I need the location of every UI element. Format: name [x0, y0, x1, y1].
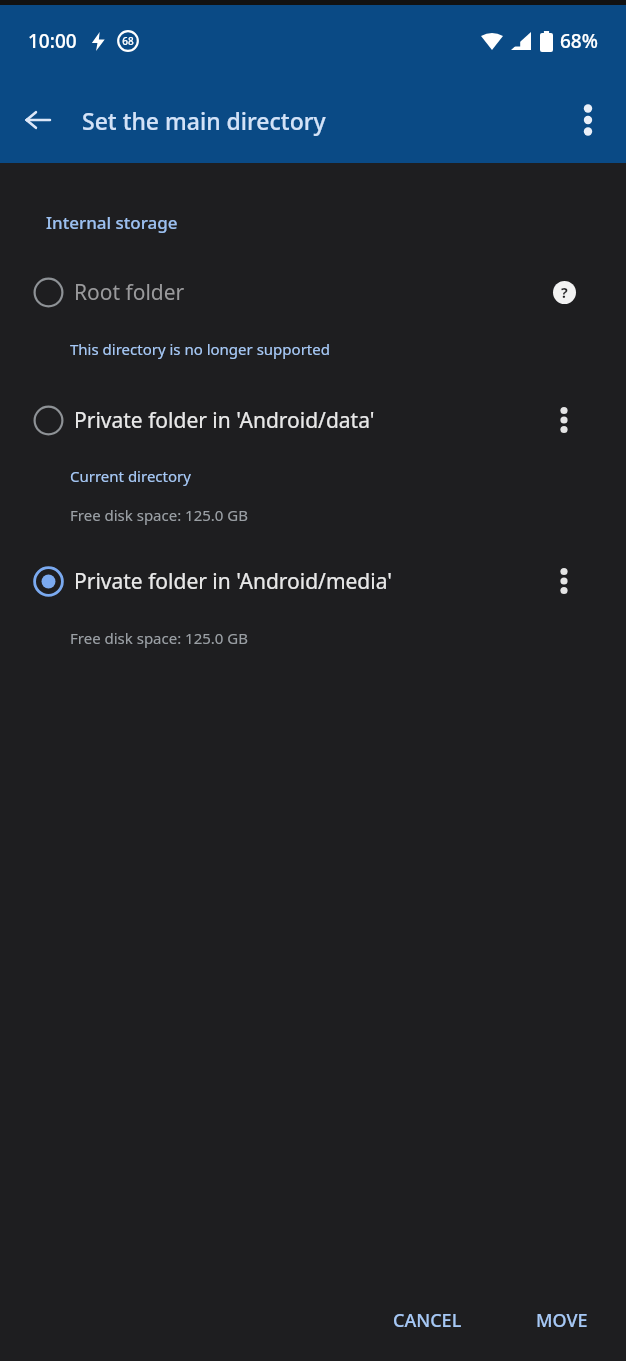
staticText: CANCEL [393, 1308, 462, 1333]
staticText: 10:00 [28, 28, 77, 54]
staticText: Free disk space: 125.0 GB [70, 505, 249, 525]
staticText: Private folder in 'Android/media' [74, 567, 393, 596]
staticText: MOVE [536, 1308, 588, 1333]
button[interactable]: Root folder [0, 265, 626, 319]
button[interactable]: MOVE [520, 1296, 604, 1345]
button[interactable]: Private folder in 'Android/data' [0, 397, 626, 443]
staticText: Internal storage [46, 211, 178, 234]
staticText: ? [561, 283, 568, 302]
button[interactable]: More options for Android data folder [542, 398, 586, 442]
staticText: Private folder in 'Android/data' [74, 406, 375, 435]
staticText: Free disk space: 125.0 GB [70, 628, 249, 648]
staticText: 68% [560, 28, 598, 54]
staticText: 68 [122, 34, 134, 48]
button[interactable]: Back [10, 92, 66, 148]
staticText: Root folder [74, 278, 185, 307]
staticText: Current directory [70, 466, 191, 486]
button[interactable]: Help [542, 270, 586, 314]
staticText: Set the main directory [82, 105, 326, 136]
button[interactable]: More options [560, 92, 616, 148]
staticText: This directory is no longer supported [70, 339, 330, 359]
button[interactable]: Private folder in 'Android/media' [0, 558, 626, 604]
button[interactable]: CANCEL [377, 1296, 478, 1345]
button[interactable]: More options for Android media folder [542, 559, 586, 603]
